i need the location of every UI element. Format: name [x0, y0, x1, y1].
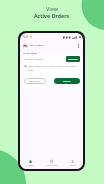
button[interactable]: Order ID # 426105	[21, 54, 82, 88]
button[interactable]: Order History	[41, 156, 62, 169]
staticText: 9:41	[23, 35, 29, 39]
staticText: Home	[28, 164, 34, 166]
button[interactable]: View Details	[24, 78, 46, 84]
staticText: Shanti Nagar, 2 Look, Andrah, Howrah, We…	[28, 65, 80, 71]
button[interactable]: Home	[20, 156, 41, 169]
staticText: View Details	[29, 80, 41, 83]
staticText: Active Orders	[34, 12, 70, 19]
staticText: Order ID # 426105	[24, 58, 44, 61]
button[interactable]: More options	[75, 43, 81, 49]
staticText: Profile	[70, 164, 76, 166]
button[interactable]: Reorder	[54, 78, 80, 84]
staticText: Order History	[46, 164, 58, 166]
button[interactable]: Profile	[62, 156, 83, 169]
staticText: View	[46, 5, 59, 12]
staticText: Active Order	[23, 51, 38, 54]
staticText: TEST MOBILE	[30, 44, 44, 47]
staticText: Packaging	[68, 58, 78, 61]
staticText: Reorder	[63, 80, 71, 83]
